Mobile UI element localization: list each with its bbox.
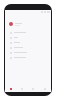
button[interactable] xyxy=(5,40,51,45)
button[interactable] xyxy=(5,35,51,40)
button[interactable] xyxy=(5,50,51,55)
button[interactable]: Library xyxy=(27,86,39,92)
button[interactable]: Home xyxy=(5,86,16,92)
button[interactable] xyxy=(5,30,51,35)
button[interactable] xyxy=(5,45,51,50)
button[interactable]: Search xyxy=(16,86,27,92)
button[interactable]: Profile xyxy=(39,86,51,92)
button[interactable] xyxy=(5,55,51,60)
button[interactable] xyxy=(9,20,35,28)
